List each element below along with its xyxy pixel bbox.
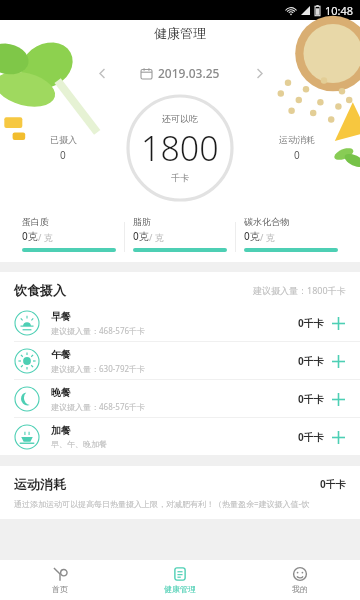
staticText: 建议摄入量：468-576千卡 [51,325,146,336]
staticText: / 克 [38,231,53,243]
staticText: 2019.03.25 [158,65,220,81]
staticText: 午餐 [51,348,71,361]
staticText: / 克 [260,231,275,243]
button[interactable]: 午餐 [0,342,360,380]
button[interactable]: 晚餐 [0,380,360,418]
staticText: 碳水化合物 [244,216,289,227]
button[interactable]: Add 晚餐 [330,391,346,407]
staticText: 0 [294,148,300,162]
staticText: 脂肪 [133,216,151,227]
button[interactable]: 2019.03.25 [141,65,220,81]
button[interactable]: 我的 [240,560,360,600]
staticText: 千卡 [171,172,189,183]
staticText: 加餐 [51,424,71,437]
button[interactable]: 首页 [0,560,120,600]
button[interactable]: 加餐 [0,418,360,456]
button[interactable]: Add 加餐 [330,429,346,445]
staticText: 我的 [292,584,308,594]
staticText: 建议摄入量：630-792千卡 [51,363,146,374]
staticText: 早、午、晚加餐 [51,439,107,449]
staticText: 运动消耗 [279,134,315,145]
button[interactable]: 早餐 [0,304,360,342]
staticText: 1800 [141,125,219,171]
staticText: 0千卡 [320,477,346,491]
staticText: 建议摄入量：1800千卡 [253,284,346,296]
staticText: 首页 [52,584,68,594]
staticText: 0千卡 [298,430,324,444]
staticText: 运动消耗 [14,476,66,492]
staticText: 0 [60,148,66,162]
button[interactable]: Add 早餐 [330,315,346,331]
button[interactable]: 健康管理 [120,560,240,600]
staticText: 蛋白质 [22,216,49,227]
staticText: 0千卡 [298,354,324,368]
staticText: 0克 [244,229,260,243]
button[interactable]: Add 午餐 [330,353,346,369]
staticText: 还可以吃 [162,113,198,124]
staticText: 晚餐 [51,386,71,399]
staticText: 建议摄入量：468-576千卡 [51,401,146,412]
staticText: 0千卡 [298,392,324,406]
staticText: 0克 [22,229,38,243]
button[interactable]: Previous day [89,60,115,86]
staticText: 已摄入 [50,134,77,145]
staticText: 0克 [133,229,149,243]
staticText: 10:48 [325,3,354,18]
staticText: 饮食摄入 [14,282,66,298]
staticText: 早餐 [51,310,71,323]
staticText: 健康管理 [164,584,196,594]
staticText: 健康管理 [154,25,206,41]
button[interactable]: Next day [246,60,272,86]
staticText: / 克 [149,231,164,243]
staticText: 0千卡 [298,316,324,330]
staticText: 通过添加运动可以提高每日热量摄入上限，对减肥有利！（热量盈余=建议摄入值-饮 [14,498,310,509]
